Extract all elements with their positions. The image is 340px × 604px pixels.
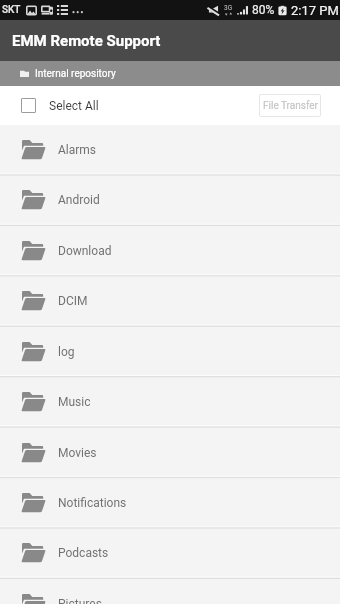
- staticText: Music: [58, 395, 91, 409]
- staticText: Download: [58, 244, 112, 258]
- staticText: 3G: [224, 4, 233, 12]
- staticText: 2:17 PM: [291, 3, 339, 18]
- staticText: Android: [58, 193, 100, 207]
- staticText: Podcasts: [58, 546, 109, 560]
- staticText: Pictures: [58, 597, 102, 604]
- button[interactable]: File Transfer: [259, 94, 321, 117]
- button[interactable]: log: [0, 327, 340, 377]
- button[interactable]: Android: [0, 175, 340, 225]
- other: Sound muted: [207, 4, 219, 17]
- other: 3G data: [224, 4, 233, 16]
- button[interactable]: Music: [0, 377, 340, 427]
- other: Signal strength: [237, 5, 248, 16]
- button[interactable]: Internal repository: [0, 61, 340, 86]
- staticText: Movies: [58, 446, 97, 460]
- button[interactable]: Select All: [0, 86, 109, 125]
- staticText: File Transfer: [263, 100, 318, 112]
- other: Battery charging: [278, 4, 287, 17]
- staticText: log: [58, 345, 75, 359]
- staticText: Notifications: [58, 496, 127, 510]
- button[interactable]: Download: [0, 226, 340, 276]
- other: Screen mirroring: [41, 5, 53, 15]
- staticText: SKT: [2, 4, 21, 16]
- staticText: Internal repository: [35, 68, 116, 80]
- other: Gallery: [26, 5, 37, 16]
- staticText: Select All: [49, 99, 99, 113]
- button[interactable]: Alarms: [0, 125, 340, 175]
- staticText: DCIM: [58, 294, 88, 308]
- button[interactable]: Podcasts: [0, 528, 340, 578]
- staticText: 80%: [252, 3, 275, 17]
- button[interactable]: Pictures: [0, 579, 340, 604]
- staticText: EMM Remote Support: [12, 32, 161, 50]
- button[interactable]: Notifications: [0, 478, 340, 528]
- button[interactable]: Movies: [0, 428, 340, 478]
- button[interactable]: DCIM: [0, 276, 340, 326]
- staticText: Alarms: [58, 143, 97, 157]
